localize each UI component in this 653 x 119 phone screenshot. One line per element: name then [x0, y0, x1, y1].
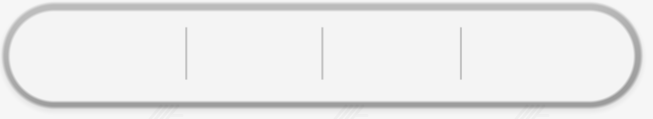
button[interactable]: Second segment	[186, 11, 322, 102]
button[interactable]: Fourth segment	[461, 11, 635, 102]
button[interactable]: First segment	[9, 11, 186, 102]
button[interactable]: Third segment	[322, 11, 461, 102]
